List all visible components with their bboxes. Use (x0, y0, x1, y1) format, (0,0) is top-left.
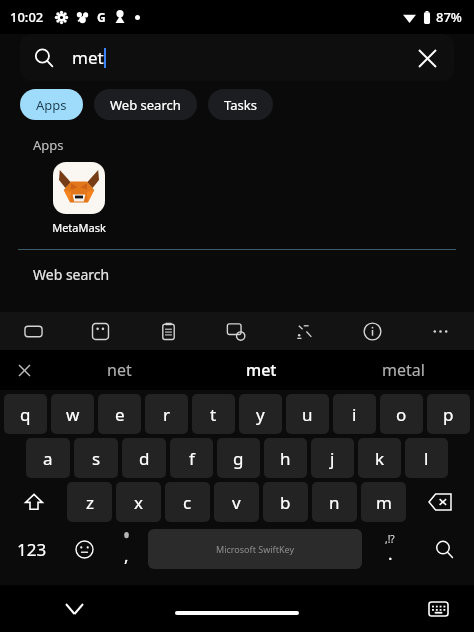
button[interactable]: u (286, 394, 329, 434)
button[interactable]: q (4, 394, 47, 434)
staticText: m (376, 491, 392, 514)
staticText: ,!? (385, 532, 395, 546)
button[interactable]: MetaMask (48, 158, 110, 235)
button[interactable]: 123 (2, 526, 62, 572)
staticText: met (72, 46, 104, 69)
staticText: l (424, 447, 429, 470)
staticText: v (232, 491, 241, 514)
button[interactable]: t (192, 394, 235, 434)
button[interactable]: p (427, 394, 470, 434)
staticText: z (86, 491, 94, 514)
staticText: r (163, 403, 171, 426)
button[interactable]: net (48, 350, 190, 390)
staticText: G (97, 9, 106, 25)
button[interactable]: e (98, 394, 141, 434)
button[interactable]: j (311, 438, 354, 478)
button[interactable]: n (312, 482, 357, 522)
button[interactable]: Translate (270, 312, 338, 350)
button[interactable]: c (165, 482, 210, 522)
staticText: metal (382, 359, 425, 381)
staticText: c (183, 491, 192, 514)
button[interactable]: k (358, 438, 401, 478)
button[interactable]: h (264, 438, 307, 478)
staticText: Web search (110, 96, 181, 114)
staticText: k (375, 447, 385, 470)
button[interactable]: Hide keyboard (50, 585, 98, 632)
button[interactable]: v (214, 482, 259, 522)
button[interactable]: m (361, 482, 406, 522)
staticText: net (107, 359, 132, 381)
button[interactable]: met (190, 350, 332, 390)
button[interactable]: Space (148, 529, 362, 569)
staticText: Web search (33, 265, 110, 284)
button[interactable]: z (67, 482, 112, 522)
button[interactable]: Switch keyboard (416, 587, 460, 631)
button[interactable]: Settings (202, 312, 270, 350)
staticText: f (189, 447, 195, 470)
staticText: i (352, 403, 357, 426)
button[interactable]: o (380, 394, 423, 434)
staticText: 10:02 (10, 8, 44, 26)
button[interactable]: Period and punctuation (364, 526, 416, 572)
staticText: d (139, 447, 150, 470)
button[interactable]: y (239, 394, 282, 434)
button[interactable]: Emoji (62, 526, 106, 572)
button[interactable]: r (145, 394, 188, 434)
button[interactable]: g (217, 438, 260, 478)
button[interactable]: Info (338, 312, 406, 350)
button[interactable]: i (333, 394, 376, 434)
button[interactable]: d (122, 438, 166, 478)
staticText: h (280, 447, 291, 470)
staticText: a (43, 447, 53, 470)
button[interactable]: Shift (2, 482, 65, 522)
button[interactable]: Clear search (414, 45, 440, 71)
staticText: . (388, 542, 393, 565)
staticText: e (115, 403, 125, 426)
button[interactable]: b (263, 482, 308, 522)
staticText: j (330, 447, 335, 470)
button[interactable]: Tasks (208, 89, 273, 120)
button[interactable]: Web search (94, 89, 197, 120)
button[interactable]: Stickers (67, 312, 134, 350)
button[interactable]: Voice input and comma (106, 526, 146, 572)
staticText: p (443, 403, 454, 426)
staticText: u (302, 403, 313, 426)
button[interactable]: Apps (20, 89, 83, 120)
staticText: q (20, 403, 31, 426)
staticText: Apps (33, 136, 64, 154)
staticText: t (210, 403, 217, 426)
button[interactable]: GIF (0, 312, 67, 350)
button[interactable]: Expand (0, 350, 48, 390)
button[interactable]: a (26, 438, 70, 478)
button[interactable]: Backspace (408, 482, 472, 522)
staticText: o (396, 403, 407, 426)
button[interactable]: x (116, 482, 161, 522)
staticText: Tasks (224, 96, 257, 114)
staticText: n (329, 491, 340, 514)
staticText: s (92, 447, 101, 470)
button[interactable]: met (20, 34, 454, 81)
staticText: Apps (36, 96, 67, 114)
staticText: MetaMask (52, 220, 106, 235)
button[interactable]: More (406, 312, 474, 350)
button[interactable]: l (405, 438, 448, 478)
staticText: , (124, 544, 129, 567)
button[interactable]: Clipboard (134, 312, 202, 350)
staticText: Microsoft SwiftKey (216, 543, 294, 555)
staticText: met (246, 359, 277, 381)
button[interactable]: f (170, 438, 213, 478)
staticText: y (256, 403, 265, 426)
staticText: 123 (17, 538, 47, 561)
staticText: g (233, 447, 244, 470)
staticText: x (134, 491, 143, 514)
staticText: b (280, 491, 291, 514)
button[interactable]: metal (332, 350, 474, 390)
button[interactable]: Search (416, 526, 472, 572)
button[interactable]: w (51, 394, 94, 434)
staticText: w (66, 403, 80, 426)
button[interactable]: s (74, 438, 118, 478)
staticText: 87% (436, 8, 462, 26)
